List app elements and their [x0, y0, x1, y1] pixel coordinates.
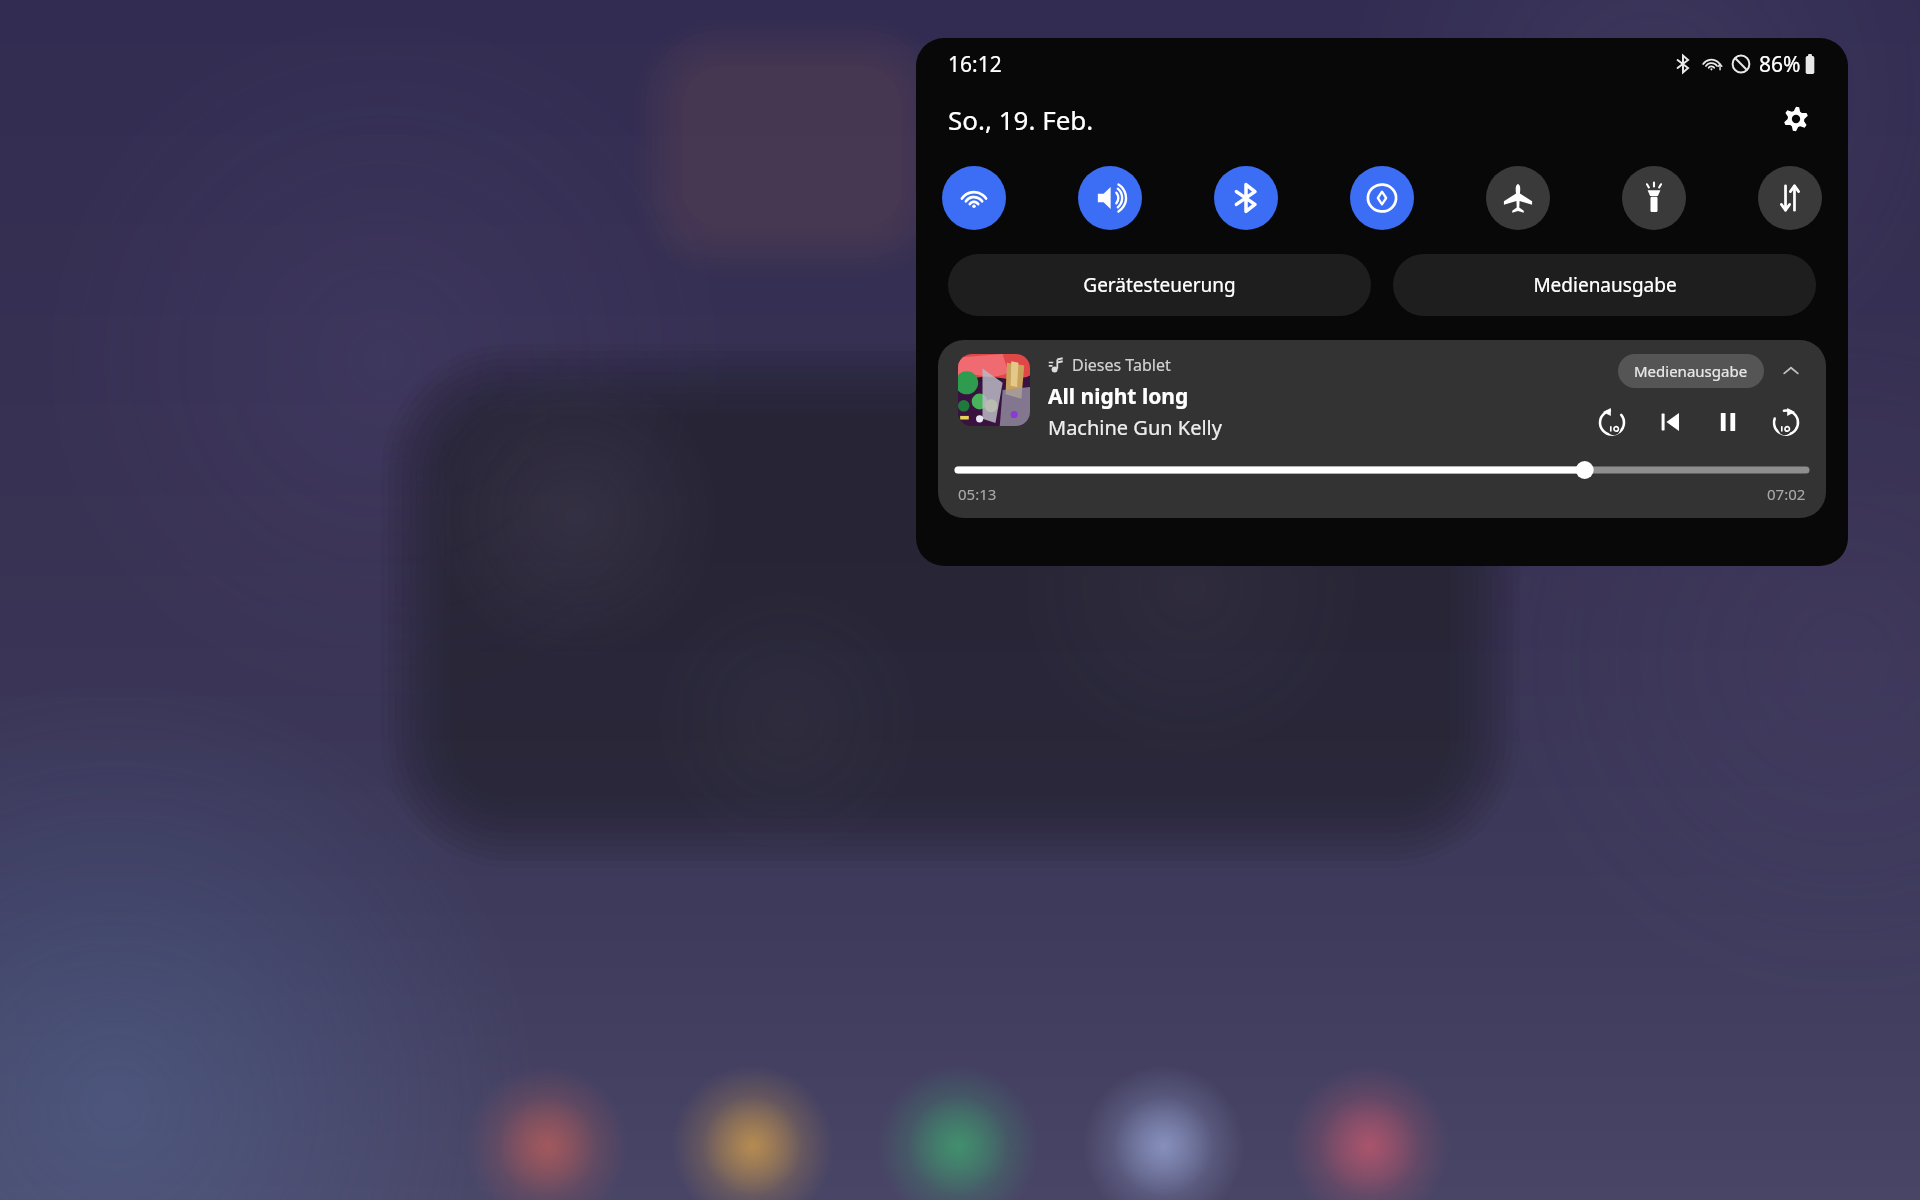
button[interactable]: Auto rotate	[1350, 166, 1414, 230]
button[interactable]: Seek bar	[958, 462, 1806, 478]
button[interactable]: Rewind 10 seconds	[1592, 402, 1632, 442]
button[interactable]: Dieses Tablet	[938, 340, 1826, 518]
staticText: 86%	[1759, 50, 1801, 79]
button[interactable]: Gerätesteuerung	[948, 254, 1371, 316]
button[interactable]: Settings	[1776, 99, 1816, 139]
staticText: All night long	[1048, 382, 1189, 411]
button[interactable]: Medienausgabe	[1393, 254, 1816, 316]
button[interactable]: Sound	[1078, 166, 1142, 230]
button[interactable]: Forward 10 seconds	[1766, 402, 1806, 442]
button[interactable]: Previous	[1650, 402, 1690, 442]
button[interactable]: Wi-Fi	[942, 166, 1006, 230]
button[interactable]: Bluetooth	[1214, 166, 1278, 230]
staticText: Dieses Tablet	[1072, 354, 1171, 376]
staticText: Machine Gun Kelly	[1048, 414, 1222, 441]
staticText: 05:13	[958, 484, 997, 504]
staticText: Medienausgabe	[1634, 361, 1748, 381]
staticText: 16:12	[948, 50, 1002, 79]
staticText: Medienausgabe	[1533, 272, 1677, 298]
button[interactable]: Airplane mode	[1486, 166, 1550, 230]
button[interactable]: Collapse	[1776, 356, 1806, 386]
button[interactable]: Pause	[1708, 402, 1748, 442]
button[interactable]: Medienausgabe	[1618, 354, 1764, 388]
staticText: Gerätesteuerung	[1083, 272, 1236, 298]
button[interactable]: Mobile data	[1758, 166, 1822, 230]
staticText: So., 19. Feb.	[948, 102, 1094, 137]
staticText: 07:02	[1767, 484, 1806, 504]
button[interactable]: Flashlight	[1622, 166, 1686, 230]
